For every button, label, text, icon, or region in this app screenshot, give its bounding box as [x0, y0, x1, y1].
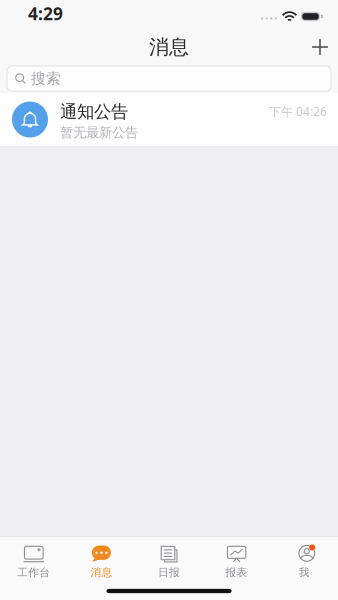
button[interactable]: 我: [270, 537, 338, 585]
staticText: 我: [299, 566, 310, 579]
staticText: 报表: [226, 566, 248, 579]
staticText: 工作台: [17, 566, 50, 579]
staticText: 下午 04:26: [269, 103, 327, 119]
staticText: 日报: [158, 566, 180, 579]
staticText: 消息: [149, 35, 189, 59]
staticText: 搜索: [31, 69, 61, 87]
staticText: 4:29: [28, 2, 63, 25]
button[interactable]: 搜索: [7, 66, 331, 91]
button[interactable]: 通知公告: [0, 93, 338, 146]
staticText: 通知公告: [60, 101, 128, 122]
staticText: 消息: [90, 566, 112, 579]
button[interactable]: 日报: [135, 537, 203, 585]
button[interactable]: 报表: [203, 537, 270, 585]
button[interactable]: 消息: [68, 537, 135, 585]
button[interactable]: New message: [302, 28, 338, 66]
button[interactable]: 工作台: [0, 537, 68, 585]
staticText: 暂无最新公告: [60, 124, 138, 141]
